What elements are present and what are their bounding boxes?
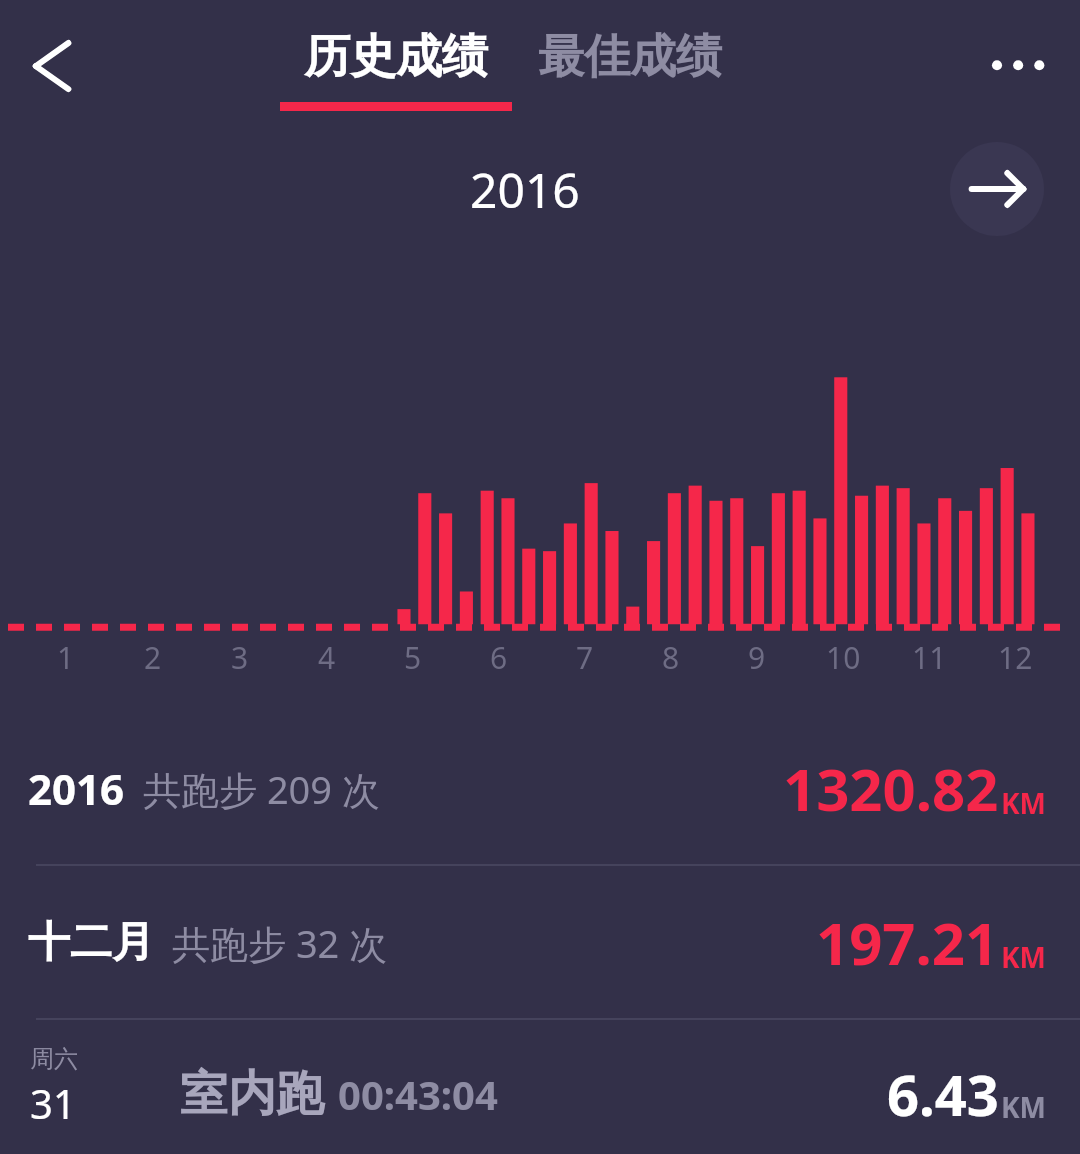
staticText: 2 [144, 637, 162, 678]
staticText: 8 [662, 637, 680, 678]
staticText: 6 [490, 637, 508, 678]
button[interactable]: 2016 [0, 712, 1080, 864]
button[interactable]: 历史成绩 [280, 28, 512, 111]
staticText: 3 [231, 637, 249, 678]
staticText: 1320.82 [783, 749, 999, 828]
staticText: 1 [57, 637, 75, 678]
button[interactable]: 十二月 [0, 866, 1080, 1018]
staticText: 2016 [28, 760, 125, 817]
button[interactable]: 最佳成绩 [538, 28, 722, 86]
staticText: 5 [404, 637, 422, 678]
staticText: 共跑步 209 次 [143, 763, 380, 815]
staticText: 十二月 [28, 916, 154, 969]
staticText: 6.43 [887, 1056, 999, 1132]
staticText: 周六 [30, 1044, 78, 1074]
staticText: 11 [912, 637, 947, 678]
button[interactable]: Next year [950, 142, 1044, 236]
staticText: 31 [30, 1076, 76, 1130]
button[interactable]: 周六 [0, 1020, 1080, 1154]
staticText: 12 [998, 637, 1033, 678]
staticText: 2016 [470, 157, 580, 222]
staticText: 历史成绩 [304, 28, 488, 86]
staticText: 4 [318, 637, 336, 678]
staticText: 共跑步 32 次 [172, 917, 388, 969]
staticText: 室内跑 [180, 1064, 324, 1124]
staticText: 197.21 [816, 903, 999, 982]
staticText: KM [1001, 1088, 1046, 1126]
button[interactable]: Back [6, 20, 102, 116]
staticText: 最佳成绩 [538, 28, 722, 86]
staticText: 10 [826, 637, 861, 678]
staticText: 7 [576, 637, 594, 678]
staticText: 9 [748, 637, 766, 678]
button[interactable]: More options [974, 22, 1066, 114]
staticText: KM [1001, 938, 1046, 976]
staticText: KM [1001, 784, 1046, 822]
staticText: 00:43:04 [338, 1067, 498, 1121]
